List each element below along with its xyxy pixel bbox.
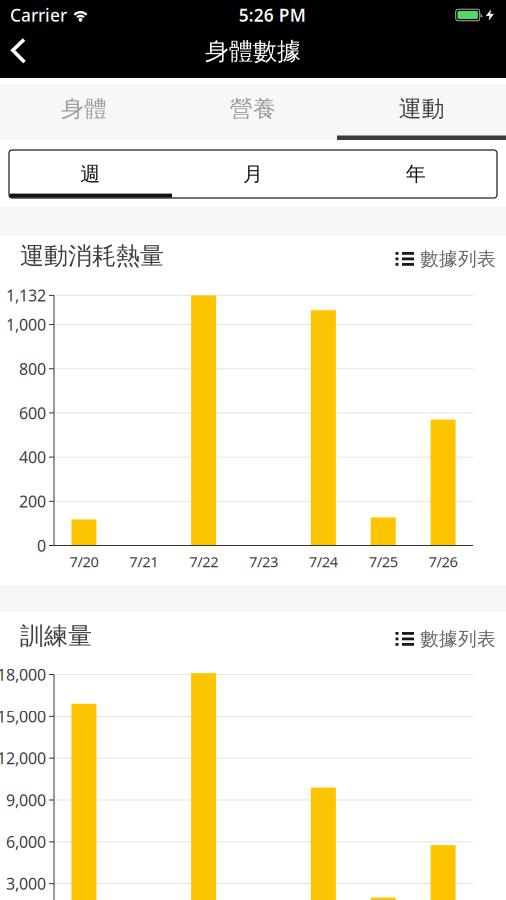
staticText: 7/24: [309, 552, 338, 571]
staticText: 18,000: [0, 664, 46, 685]
staticText: 運動: [399, 95, 445, 123]
staticText: 15,000: [0, 706, 46, 727]
staticText: Carrier: [10, 3, 67, 26]
staticText: 7/21: [129, 552, 158, 571]
staticText: 200: [19, 491, 46, 512]
staticText: 3,000: [6, 873, 46, 894]
staticText: 月: [243, 162, 263, 186]
staticText: 12,000: [0, 747, 46, 769]
staticText: 1,000: [6, 314, 46, 335]
button[interactable]: 營養: [169, 81, 337, 137]
staticText: 7/26: [429, 552, 458, 571]
staticText: 7/25: [369, 552, 398, 571]
button[interactable]: 數據列表: [395, 247, 496, 270]
button[interactable]: 週: [9, 150, 172, 198]
staticText: 1,132: [6, 285, 46, 306]
button[interactable]: 年: [334, 150, 497, 198]
staticText: 5:26 PM: [239, 3, 306, 26]
staticText: 數據列表: [420, 627, 496, 650]
staticText: 7/23: [249, 552, 278, 571]
staticText: 7/20: [69, 552, 98, 571]
staticText: 數據列表: [420, 247, 496, 270]
staticText: 身體: [61, 95, 107, 123]
staticText: 0: [37, 535, 46, 556]
staticText: 6,000: [6, 831, 46, 852]
staticText: 運動消耗熱量: [20, 241, 164, 271]
button[interactable]: 身體: [0, 81, 169, 137]
staticText: 營養: [230, 95, 276, 123]
staticText: 年: [406, 162, 426, 186]
button[interactable]: Back: [0, 30, 43, 78]
staticText: 9,000: [6, 789, 46, 811]
button[interactable]: 數據列表: [395, 627, 496, 650]
staticText: 7/22: [189, 552, 218, 571]
button[interactable]: 月: [172, 150, 334, 198]
staticText: 600: [19, 402, 46, 423]
staticText: 800: [19, 358, 46, 379]
button[interactable]: 運動: [337, 81, 506, 137]
staticText: 訓練量: [20, 621, 92, 651]
staticText: 400: [19, 446, 46, 468]
staticText: 週: [80, 162, 100, 186]
staticText: 身體數據: [205, 37, 301, 66]
